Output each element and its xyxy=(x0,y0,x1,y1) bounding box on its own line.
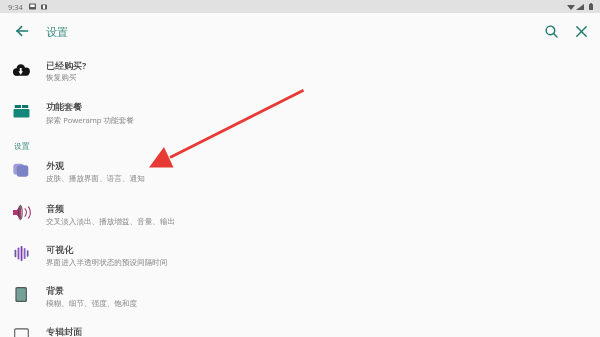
staticText: 探索 Poweramp 功能套餐 xyxy=(46,115,134,125)
staticText: 背景 xyxy=(46,285,64,296)
button[interactable]: Close xyxy=(567,17,595,45)
staticText: 功能套餐 xyxy=(46,101,82,112)
staticText: 专辑封面 xyxy=(46,326,82,337)
button[interactable]: Back xyxy=(8,17,36,45)
button[interactable]: 已经购买? xyxy=(0,45,600,87)
staticText: 9:34 xyxy=(8,2,23,12)
staticText: 设置 xyxy=(14,141,30,151)
staticText: 设置 xyxy=(46,25,68,39)
staticText: 音频 xyxy=(46,203,64,214)
staticText: 恢复购买 xyxy=(46,73,77,83)
button[interactable]: 功能套餐 xyxy=(0,87,600,129)
button[interactable]: 音频 xyxy=(0,189,600,231)
button[interactable]: 可视化 xyxy=(0,230,600,272)
staticText: 外观 xyxy=(46,160,64,171)
staticText: 交叉淡入淡出、播放增益、音量、输出 xyxy=(46,217,176,227)
button[interactable]: 专辑封面 xyxy=(0,312,600,337)
button[interactable]: 外观 xyxy=(0,146,600,188)
staticText: 已经购买? xyxy=(46,59,87,71)
staticText: 皮肤、播放界面、语言、通知 xyxy=(46,174,145,184)
staticText: 模糊、细节、强度、饱和度 xyxy=(46,299,138,309)
button[interactable]: Search xyxy=(537,17,565,45)
button[interactable]: 背景 xyxy=(0,271,600,313)
staticText: 界面进入半透明状态的预设间隔时间 xyxy=(46,258,168,268)
staticText: 可视化 xyxy=(46,244,73,255)
